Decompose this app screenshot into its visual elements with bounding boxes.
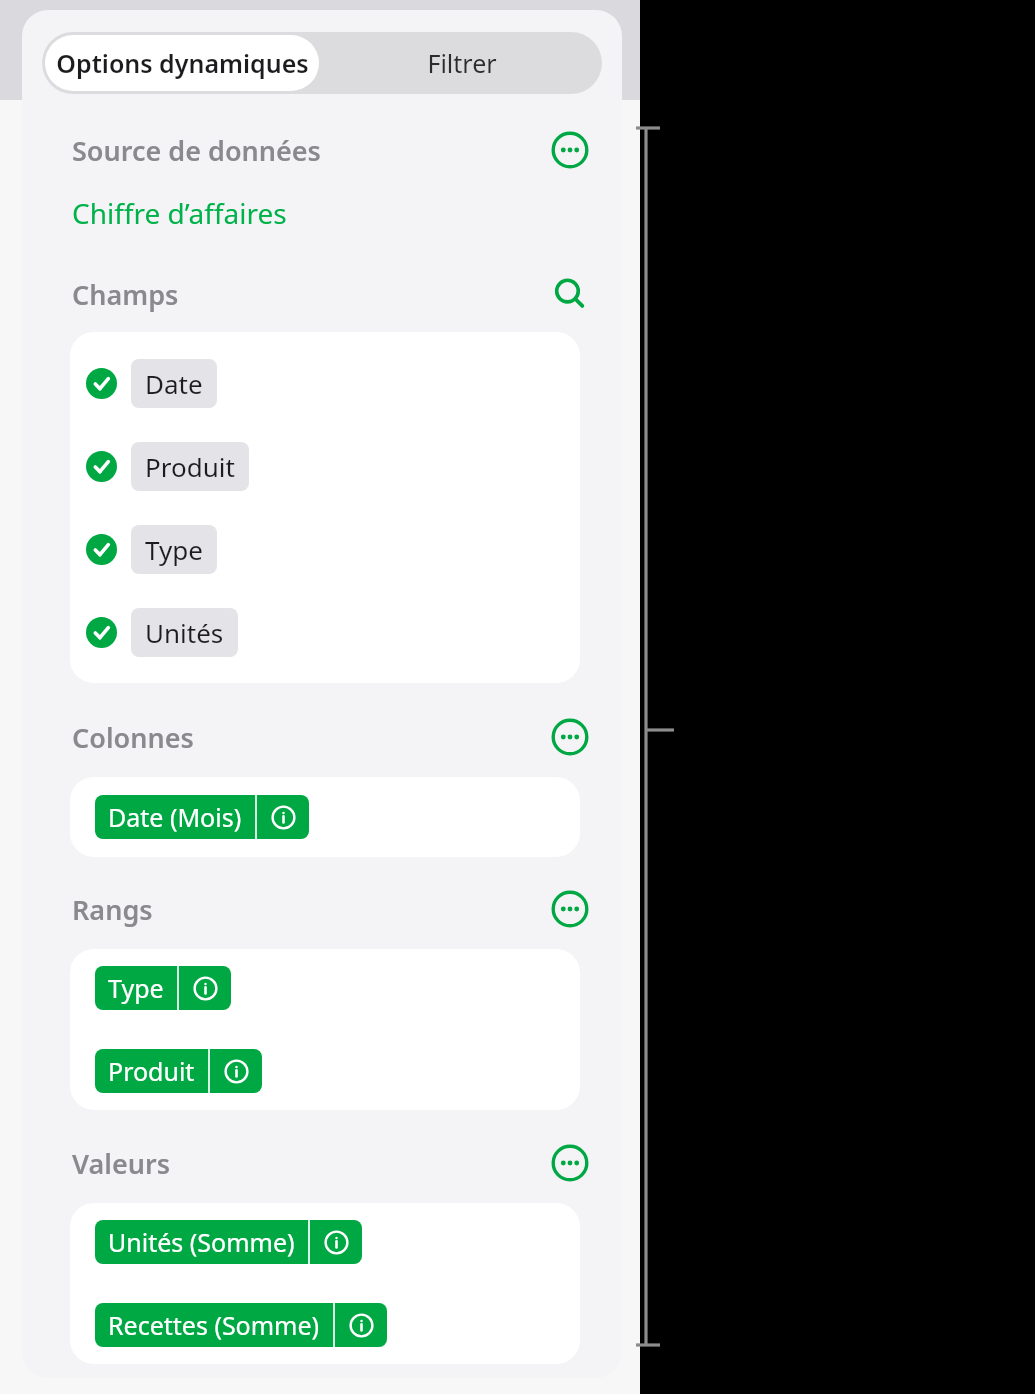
button[interactable]: Type xyxy=(70,520,580,578)
staticText: Produit xyxy=(108,1054,195,1088)
staticText: Type xyxy=(108,971,164,1005)
button[interactable]: Plus d'options xyxy=(548,128,592,172)
button[interactable]: Produit xyxy=(95,1049,262,1093)
button[interactable]: Plus d'options xyxy=(548,715,592,759)
button[interactable]: Plus d'options xyxy=(548,887,592,931)
staticText: Unités xyxy=(145,615,224,650)
button[interactable]: Plus d'options xyxy=(548,1141,592,1185)
staticText: Champs xyxy=(72,276,179,313)
button[interactable]: Options dynamiques xyxy=(45,35,319,91)
staticText: Produit xyxy=(145,449,235,484)
button[interactable]: Rechercher xyxy=(548,272,592,316)
button[interactable]: Recettes (Somme) xyxy=(95,1303,387,1347)
button[interactable]: Produit xyxy=(70,437,580,495)
button[interactable]: Date xyxy=(70,354,580,412)
button[interactable]: Chiffre d’affaires xyxy=(72,194,287,232)
staticText: Options dynamiques xyxy=(56,46,309,80)
staticText: Date (Mois) xyxy=(108,800,242,834)
button[interactable]: Type xyxy=(95,966,231,1010)
staticText: Chiffre d’affaires xyxy=(72,194,287,232)
staticText: Date xyxy=(145,366,203,401)
button[interactable]: Date (Mois) xyxy=(95,795,309,839)
button[interactable]: Unités (Somme) xyxy=(95,1220,362,1264)
button[interactable]: Unités xyxy=(70,603,580,661)
button[interactable]: Filtrer xyxy=(322,32,602,94)
staticText: Type xyxy=(145,532,203,567)
staticText: Source de données xyxy=(72,132,321,169)
staticText: Colonnes xyxy=(72,719,194,756)
staticText: Unités (Somme) xyxy=(108,1225,295,1259)
staticText: Valeurs xyxy=(72,1145,170,1182)
staticText: Filtrer xyxy=(427,46,497,80)
staticText: Rangs xyxy=(72,891,153,928)
staticText: Recettes (Somme) xyxy=(108,1308,320,1342)
